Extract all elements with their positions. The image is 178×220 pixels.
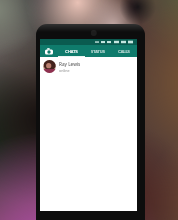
button[interactable]: CHATS bbox=[58, 45, 85, 57]
staticText: Ray Lewis bbox=[59, 61, 81, 67]
button[interactable]: Camera bbox=[40, 45, 58, 57]
staticText: online bbox=[59, 68, 70, 73]
button[interactable]: Ray Lewis bbox=[40, 57, 137, 76]
staticText: STATUS bbox=[91, 49, 105, 54]
staticText: CALLS bbox=[118, 49, 130, 54]
button[interactable]: STATUS bbox=[85, 45, 111, 57]
staticText: CHATS bbox=[65, 49, 78, 54]
button[interactable]: CALLS bbox=[111, 45, 137, 57]
